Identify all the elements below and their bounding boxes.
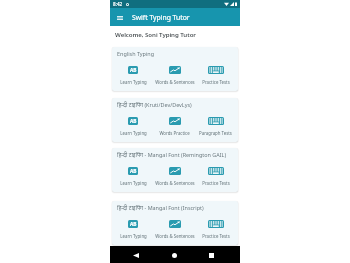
button[interactable]: Words & Sentences [154, 220, 195, 239]
staticText: 8:42 [113, 1, 123, 7]
button[interactable]: Practice Tests [195, 66, 236, 85]
button[interactable]: AB [112, 117, 154, 136]
staticText: Learn Typing [120, 130, 147, 136]
button[interactable]: AB [112, 167, 154, 186]
staticText: Practice Tests [202, 233, 230, 239]
staticText: हिन्दी टाइपिंग - Mangal Font (Remington … [117, 151, 227, 158]
staticText: AB [130, 118, 137, 125]
staticText: Learn Typing [120, 180, 147, 186]
staticText: Words Practice [159, 130, 190, 136]
staticText: हिन्दी टाइपिंग (Kruti/Dev/DevLys) [117, 101, 192, 108]
button[interactable]: हिन्दी टाइपिंग - Mangal Font (Remington … [112, 148, 238, 192]
staticText: हिन्दी टाइपिंग - Mangal Font (Inscript) [117, 204, 204, 211]
staticText: Words & Sentences [155, 233, 195, 239]
button[interactable]: हिन्दी टाइपिंग (Kruti/Dev/DevLys) [112, 98, 238, 142]
button[interactable]: Practice Tests [195, 167, 236, 186]
button[interactable]: Open navigation menu [114, 12, 125, 23]
button[interactable]: AB [112, 220, 154, 239]
staticText: Paragraph Tests [199, 130, 232, 136]
staticText: Practice Tests [202, 180, 230, 186]
button[interactable]: Home [167, 248, 181, 262]
staticText: Swift Typing Tutor [132, 13, 190, 22]
button[interactable]: Practice Tests [195, 220, 236, 239]
staticText: Words & Sentences [155, 79, 195, 85]
staticText: Practice Tests [202, 79, 230, 85]
staticText: Words & Sentences [155, 180, 195, 186]
staticText: Learn Typing [120, 79, 147, 85]
button[interactable]: Words Practice [154, 117, 195, 136]
button[interactable]: Recent apps [204, 248, 218, 262]
button[interactable]: Words & Sentences [154, 66, 195, 85]
staticText: Welcome, Soni Typing Tutor [115, 30, 196, 38]
staticText: AB [130, 168, 137, 175]
button[interactable]: English Typing [112, 47, 238, 91]
staticText: Learn Typing [120, 233, 147, 239]
button[interactable]: Paragraph Tests [195, 117, 236, 136]
staticText: AB [130, 67, 137, 74]
button[interactable]: AB [112, 66, 154, 85]
button[interactable]: हिन्दी टाइपिंग - Mangal Font (Inscript) [112, 201, 238, 245]
staticText: AB [130, 221, 137, 228]
staticText: English Typing [117, 50, 155, 57]
button[interactable]: Words & Sentences [154, 167, 195, 186]
button[interactable]: Back [129, 248, 143, 262]
